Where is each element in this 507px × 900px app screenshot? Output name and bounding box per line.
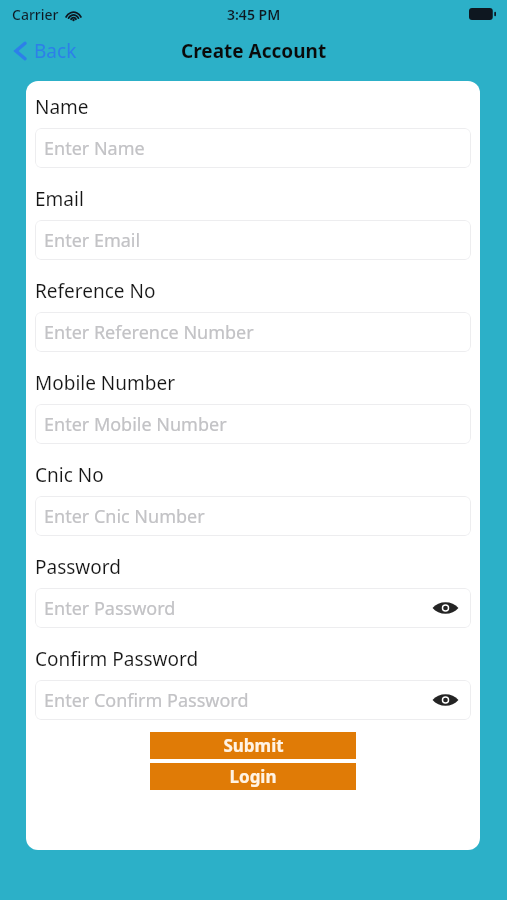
staticText: Back xyxy=(34,38,77,64)
button[interactable]: Show password xyxy=(428,683,462,717)
button[interactable]: Enter Reference Number xyxy=(35,312,471,352)
staticText: Enter Mobile Number xyxy=(44,412,227,437)
button[interactable]: Enter Confirm Password xyxy=(35,680,471,720)
staticText: Name xyxy=(35,94,89,120)
staticText: Email xyxy=(35,186,84,212)
staticText: Create Account xyxy=(181,38,327,64)
button[interactable]: Back xyxy=(0,32,91,70)
button[interactable]: Enter Name xyxy=(35,128,471,168)
staticText: Enter Reference Number xyxy=(44,320,254,345)
staticText: Enter Name xyxy=(44,136,145,161)
button[interactable]: Enter Cnic Number xyxy=(35,496,471,536)
staticText: Mobile Number xyxy=(35,370,176,396)
button[interactable]: Enter Password xyxy=(35,588,471,628)
staticText: Password xyxy=(35,554,121,580)
button[interactable]: Enter Email xyxy=(35,220,471,260)
button[interactable]: Show password xyxy=(428,591,462,625)
staticText: Reference No xyxy=(35,278,156,304)
staticText: Enter Confirm Password xyxy=(44,688,249,713)
button[interactable]: Login xyxy=(150,763,356,790)
staticText: Confirm Password xyxy=(35,646,199,672)
staticText: Enter Password xyxy=(44,596,176,621)
staticText: 3:45 PM xyxy=(227,5,281,24)
staticText: Carrier xyxy=(12,5,59,24)
staticText: Enter Email xyxy=(44,228,141,253)
staticText: Cnic No xyxy=(35,462,104,488)
button[interactable]: Submit xyxy=(150,732,356,759)
button[interactable]: Enter Mobile Number xyxy=(35,404,471,444)
staticText: Login xyxy=(229,765,277,788)
staticText: Enter Cnic Number xyxy=(44,504,205,529)
staticText: Submit xyxy=(223,734,284,757)
